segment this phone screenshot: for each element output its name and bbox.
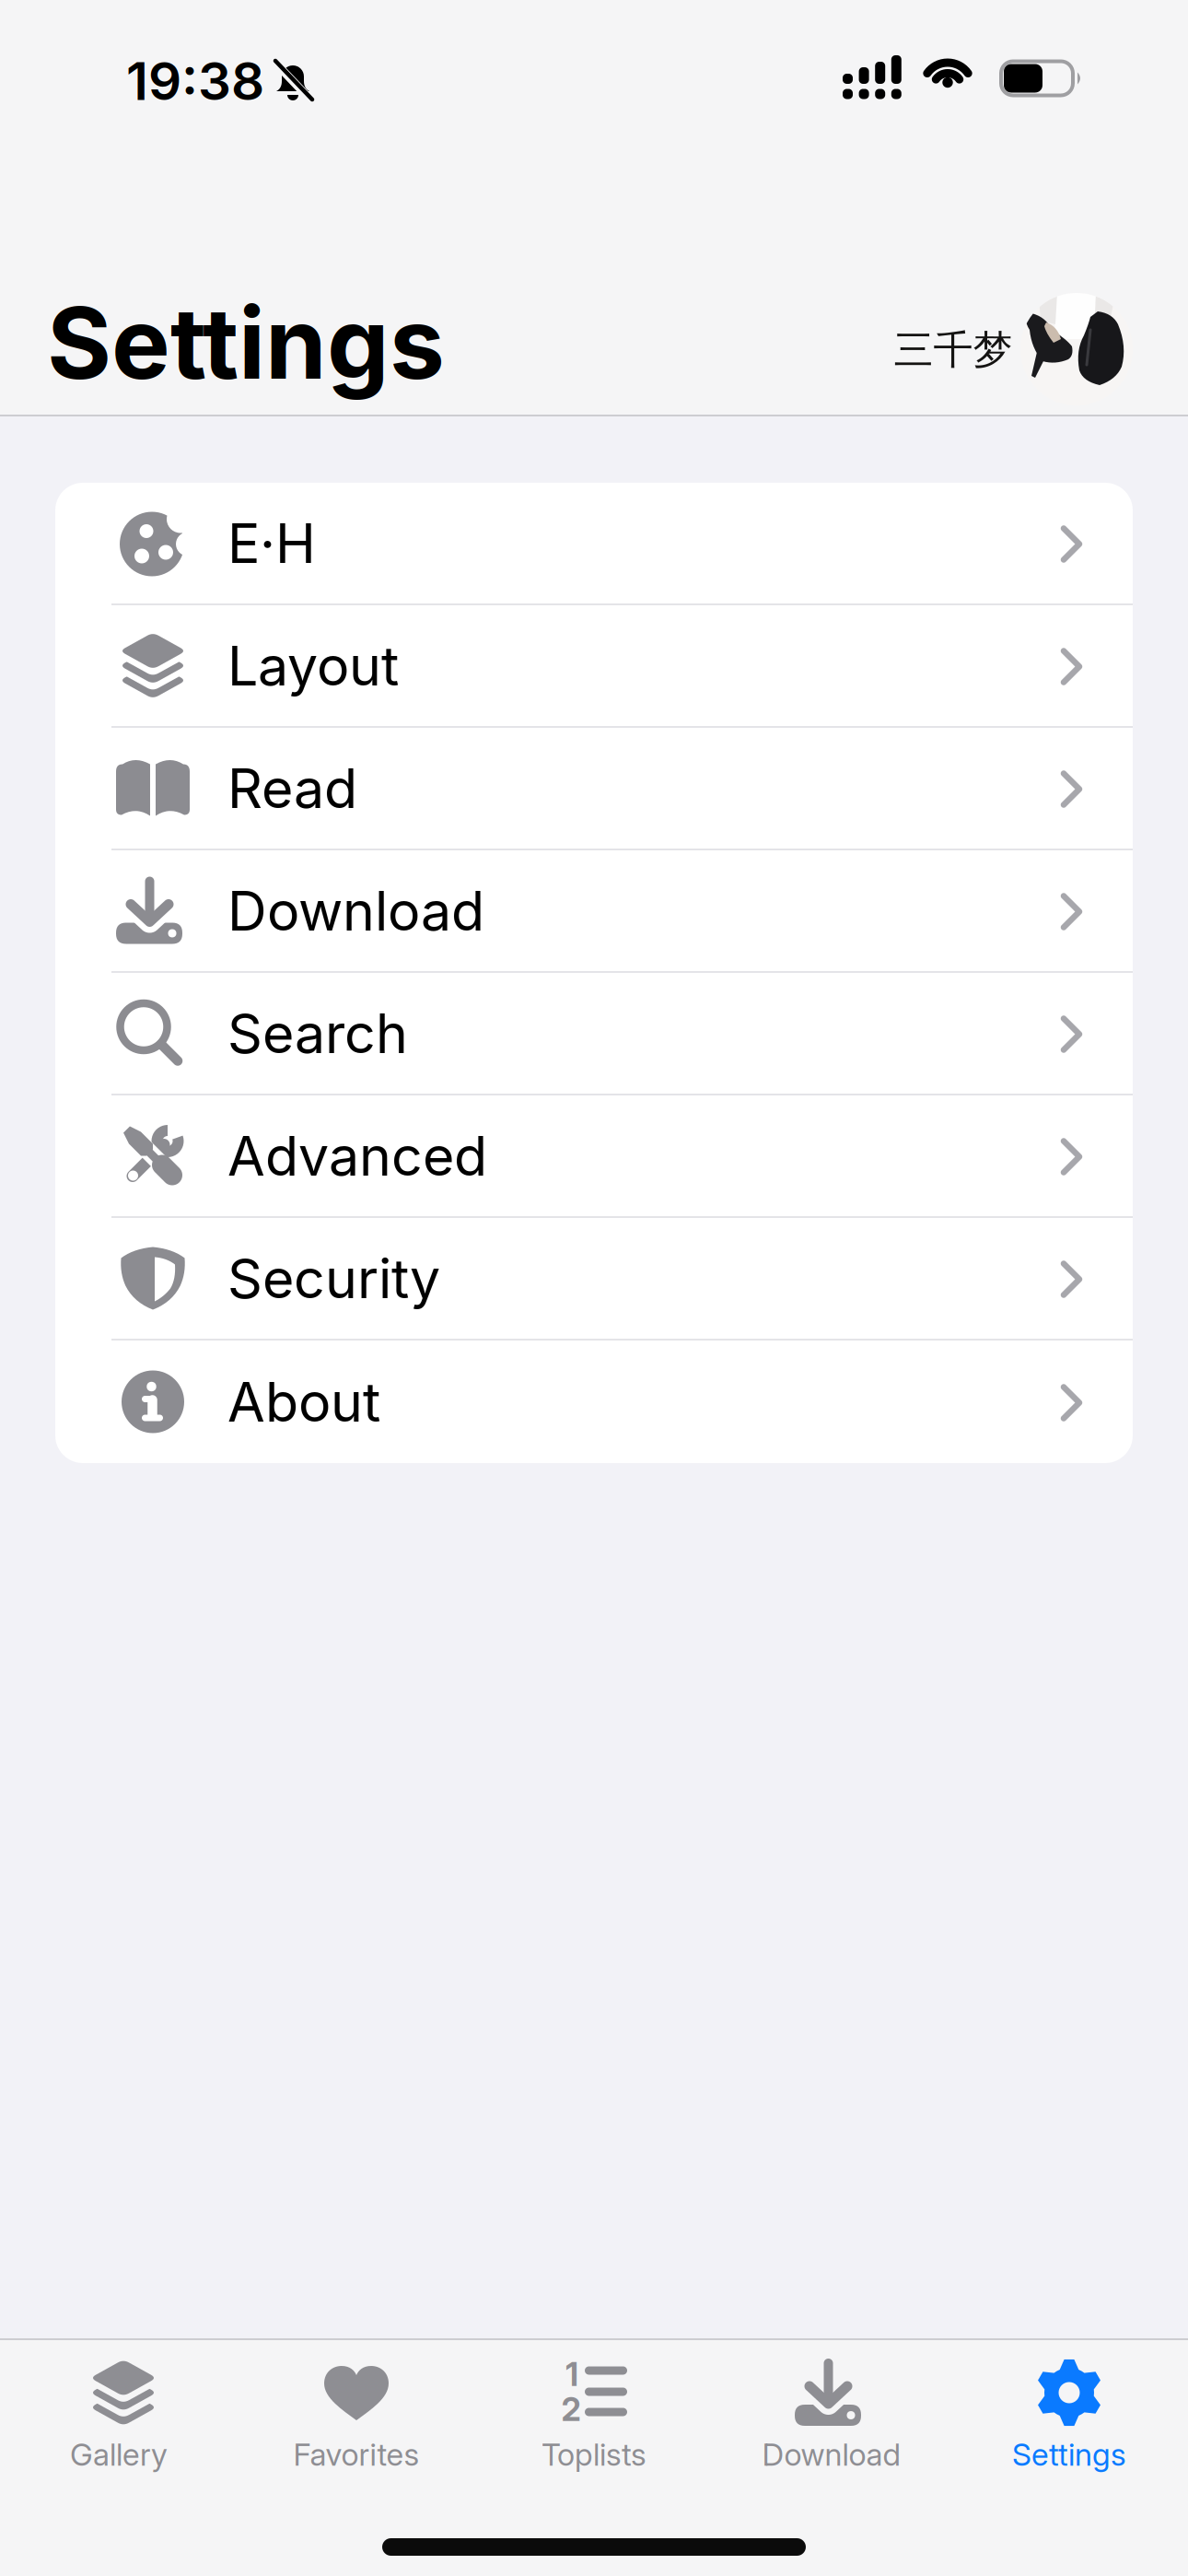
- staticText: Settings: [47, 283, 445, 402]
- staticText: 2: [561, 2390, 581, 2429]
- button[interactable]: Layout: [55, 605, 1133, 726]
- staticText: Search: [227, 1000, 408, 1066]
- button[interactable]: E·H: [55, 483, 1133, 603]
- staticText: Favorites: [293, 2436, 419, 2473]
- staticText: 三千梦: [894, 325, 1013, 375]
- button[interactable]: Read: [55, 728, 1133, 849]
- staticText: Advanced: [227, 1123, 487, 1189]
- button[interactable]: Settings: [950, 2340, 1188, 2515]
- staticText: Layout: [227, 633, 399, 699]
- staticText: Read: [227, 755, 357, 821]
- staticText: Download: [227, 878, 484, 944]
- staticText: Settings: [1012, 2436, 1126, 2473]
- button[interactable]: Download: [55, 850, 1133, 971]
- button[interactable]: About: [55, 1341, 1133, 1463]
- staticText: Gallery: [70, 2436, 168, 2473]
- button[interactable]: Search: [55, 973, 1133, 1094]
- button[interactable]: Security: [55, 1218, 1133, 1339]
- staticText: About: [227, 1369, 380, 1435]
- button[interactable]: Favorites: [238, 2340, 475, 2515]
- button[interactable]: 1: [475, 2340, 713, 2515]
- button[interactable]: Gallery: [0, 2340, 238, 2515]
- button[interactable]: Advanced: [55, 1095, 1133, 1216]
- button[interactable]: Download: [713, 2340, 950, 2515]
- staticText: Toplists: [542, 2436, 646, 2473]
- staticText: E·H: [227, 510, 316, 576]
- staticText: Security: [227, 1245, 440, 1311]
- staticText: 1: [565, 2355, 578, 2394]
- staticText: 19:38: [126, 50, 264, 113]
- button[interactable]: Profile: [885, 293, 1139, 407]
- staticText: Download: [762, 2436, 901, 2473]
